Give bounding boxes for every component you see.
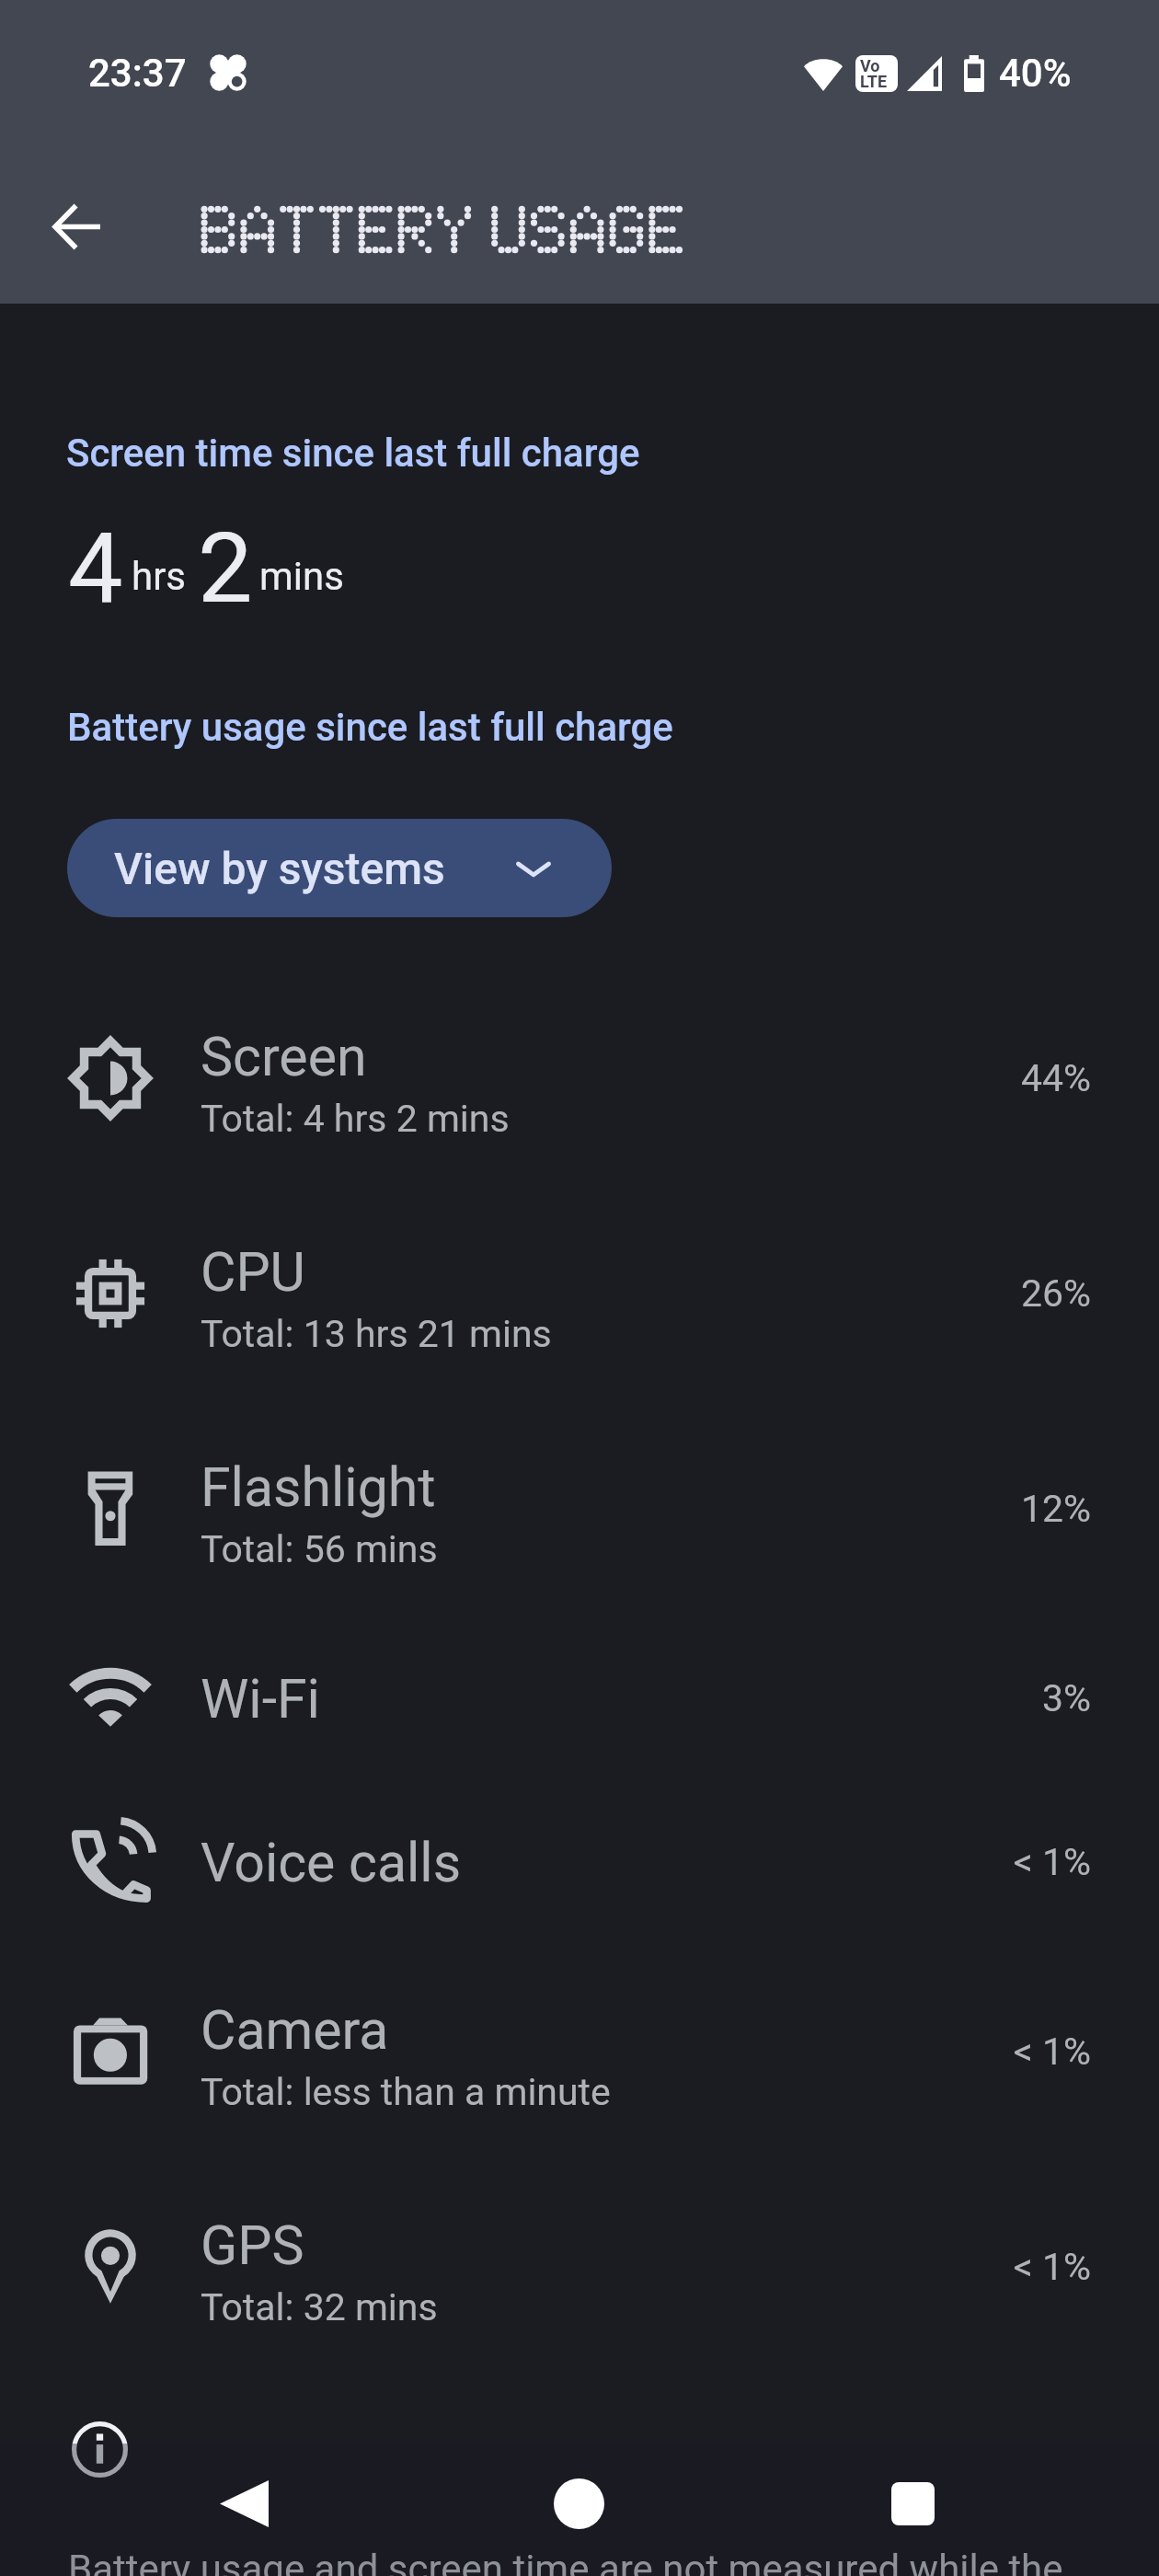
button[interactable]: CPU	[0, 1186, 1159, 1401]
button[interactable]: Screen	[0, 971, 1159, 1186]
staticText: Total: 13 hrs 21 mins	[201, 1312, 552, 1356]
staticText: GPS	[201, 2214, 304, 2277]
other: Info	[72, 2421, 128, 2478]
staticText: Battery usage and screen time are not me…	[68, 2547, 1063, 2576]
staticText: 40%	[999, 51, 1072, 96]
staticText: CPU	[201, 1240, 305, 1304]
staticText: Total: less than a minute	[201, 2070, 611, 2114]
staticText: Total: 4 hrs 2 mins	[201, 1097, 510, 1141]
staticText: Flashlight	[201, 1455, 436, 1519]
staticText: Screen time since last full charge	[66, 431, 640, 476]
staticText: 4	[68, 512, 123, 626]
staticText: mins	[259, 554, 344, 599]
staticText: 23:37	[88, 51, 187, 96]
staticText: View by systems	[114, 843, 445, 894]
staticText: 26%	[1021, 1271, 1092, 1316]
staticText: Camera	[201, 1998, 389, 2062]
staticText: < 1%	[1014, 1840, 1092, 1884]
staticText: Screen	[201, 1025, 367, 1088]
staticText: Voice calls	[201, 1831, 462, 1894]
staticText: Battery usage since last full charge	[67, 705, 673, 750]
staticText: Total: 56 mins	[201, 1527, 438, 1571]
button[interactable]: Recents	[862, 2453, 963, 2554]
button[interactable]: Flashlight	[0, 1401, 1159, 1616]
staticText: 44%	[1021, 1056, 1092, 1100]
staticText: LTE	[860, 72, 888, 91]
button[interactable]: Back	[55, 204, 100, 249]
staticText: < 1%	[1014, 2030, 1092, 2074]
staticText: 3%	[1042, 1676, 1092, 1720]
button[interactable]: Voice calls	[0, 1780, 1159, 1944]
staticText: Wi-Fi	[201, 1667, 320, 1731]
button[interactable]: Camera	[0, 1944, 1159, 2159]
button[interactable]: GPS	[0, 2159, 1159, 2375]
button[interactable]: Home	[528, 2453, 629, 2554]
button[interactable]: View by systems	[67, 819, 612, 917]
staticText: 2	[198, 512, 253, 626]
staticText: hrs	[132, 554, 187, 599]
staticText: 12%	[1021, 1487, 1092, 1531]
staticText: Total: 32 mins	[201, 2285, 438, 2329]
staticText: < 1%	[1014, 2245, 1092, 2289]
staticText: Vo	[860, 56, 880, 75]
button[interactable]: Wi-Fi	[0, 1616, 1159, 1780]
button[interactable]: Back	[193, 2453, 294, 2554]
